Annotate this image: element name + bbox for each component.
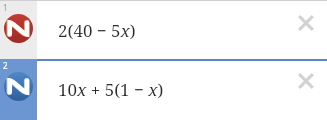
button[interactable]: 2 (0, 59, 327, 120)
button[interactable]: 1 (0, 1, 37, 59)
staticText: 2(40 − 5x) (58, 19, 136, 42)
button[interactable]: 10x + 5(1 − x) (37, 59, 327, 120)
staticText: 2 (3, 60, 8, 71)
button[interactable]: Delete expression (297, 14, 315, 32)
staticText: 1 (3, 2, 8, 13)
button[interactable]: 2 (0, 59, 37, 120)
button[interactable]: 1 (0, 1, 327, 59)
button[interactable]: Delete expression (297, 72, 315, 90)
button[interactable]: 2(40 − 5x) (37, 1, 327, 59)
staticText: 10x + 5(1 − x) (58, 78, 164, 101)
